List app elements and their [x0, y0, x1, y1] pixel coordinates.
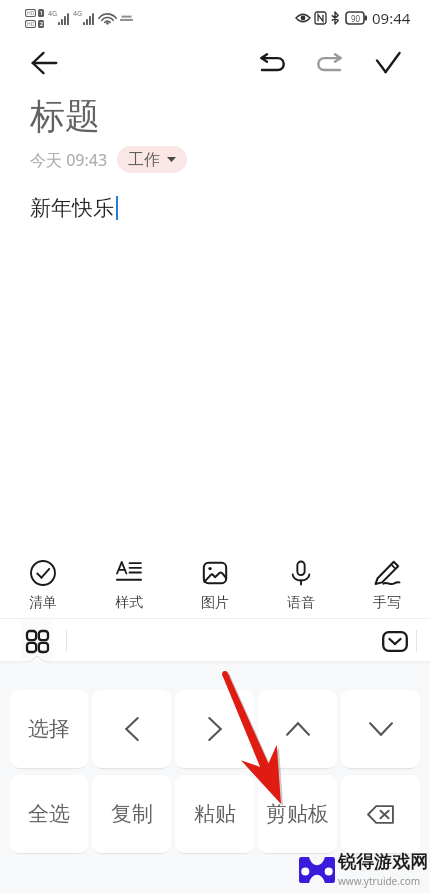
staticText: 锐得游戏网	[338, 851, 428, 874]
staticText: 09:44	[372, 8, 411, 28]
staticText: HD	[27, 10, 35, 16]
staticText: 工作	[128, 150, 160, 170]
staticText: 复制	[111, 801, 153, 827]
button[interactable]: Save	[365, 40, 410, 85]
staticText: 新年快乐	[30, 195, 114, 221]
staticText: 全选	[28, 801, 70, 827]
button[interactable]: Move down	[341, 690, 420, 768]
button[interactable]: 全选	[10, 775, 88, 853]
button[interactable]: 图片	[172, 545, 258, 618]
staticText: 样式	[115, 594, 143, 612]
staticText: 4G	[48, 9, 58, 19]
button[interactable]: 工作	[117, 146, 187, 173]
button[interactable]: 剪贴板	[258, 775, 337, 853]
staticText: 2	[40, 21, 43, 28]
staticText: www.ytruide.com	[338, 874, 421, 888]
staticText: 1	[40, 10, 43, 17]
staticText: 4G	[73, 9, 83, 19]
button[interactable]: Backspace	[341, 775, 420, 853]
staticText: 选择	[28, 716, 70, 742]
staticText: HD	[27, 21, 35, 27]
button[interactable]: Move left	[92, 690, 171, 768]
staticText: 粘贴	[194, 801, 236, 827]
button[interactable]: 语音	[258, 545, 344, 618]
button[interactable]: 清单	[0, 545, 86, 618]
staticText: 90	[351, 13, 361, 24]
button[interactable]: Move right	[175, 690, 254, 768]
staticText: 清单	[29, 594, 57, 612]
staticText: 图片	[201, 594, 229, 612]
button[interactable]: Back	[22, 41, 66, 85]
staticText: 标题	[30, 94, 100, 138]
button[interactable]: Keyboard panel	[21, 619, 53, 663]
button[interactable]: Redo	[307, 40, 352, 85]
button[interactable]: 选择	[10, 690, 88, 768]
staticText: 剪贴板	[266, 801, 329, 827]
staticText: 语音	[287, 594, 315, 612]
button[interactable]: 复制	[92, 775, 171, 853]
button[interactable]: Undo	[250, 40, 295, 85]
button[interactable]: 样式	[86, 545, 172, 618]
button[interactable]: 粘贴	[175, 775, 254, 853]
button[interactable]: 手写	[344, 545, 430, 618]
staticText: 今天 09:43	[30, 149, 108, 171]
button[interactable]: Hide keyboard	[376, 624, 414, 658]
button[interactable]: Move up	[258, 690, 337, 768]
staticText: 手写	[373, 594, 401, 612]
